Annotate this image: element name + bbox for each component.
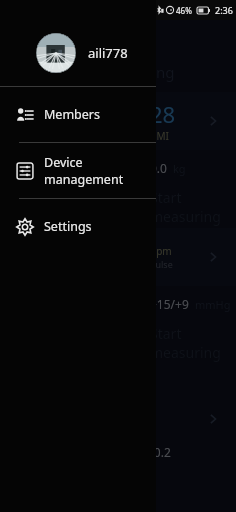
staticText: Start measuring xyxy=(61,62,175,82)
other: Members xyxy=(16,106,34,124)
staticText: Start measuring xyxy=(150,188,236,226)
staticText: aili778 xyxy=(88,44,128,62)
staticText: bpm xyxy=(150,244,172,258)
staticText: BMI xyxy=(150,129,169,143)
button[interactable]: Device management xyxy=(0,143,156,198)
staticText: Settings xyxy=(44,218,92,235)
staticText: mmHg xyxy=(195,297,231,312)
staticText: +15/+9 xyxy=(150,296,189,312)
staticText: 2:36 xyxy=(215,4,233,16)
staticText: -0.2 xyxy=(150,444,171,460)
staticText: Members xyxy=(44,106,100,123)
other: Settings xyxy=(16,218,34,236)
staticText: Device management xyxy=(44,154,156,188)
button[interactable]: aili778 xyxy=(0,20,156,86)
button[interactable]: Members xyxy=(0,87,156,142)
staticText: 28 xyxy=(150,99,176,129)
staticText: Start measuring xyxy=(150,324,236,362)
staticText: Pulse xyxy=(150,258,173,270)
staticText: 0.0 xyxy=(150,160,167,176)
staticText: 46% xyxy=(176,5,192,16)
button[interactable]: Settings xyxy=(0,199,156,254)
staticText: kg xyxy=(173,161,186,176)
other: Device management xyxy=(16,162,34,180)
